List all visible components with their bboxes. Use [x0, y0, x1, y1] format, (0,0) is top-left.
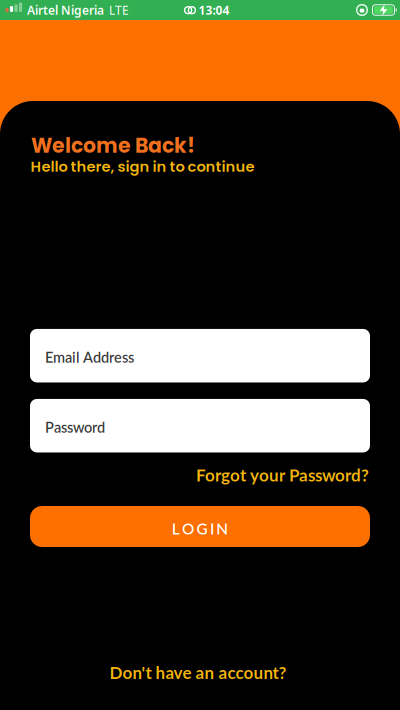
button[interactable]: L	[30, 506, 370, 547]
button[interactable]: Email Address	[30, 329, 370, 382]
staticText: LTE	[109, 2, 129, 18]
staticText: N	[216, 519, 228, 538]
staticText: G	[196, 519, 207, 538]
staticText: Forgot your Password?	[196, 465, 369, 485]
button[interactable]: Password	[30, 399, 370, 452]
staticText: 13:04	[198, 2, 229, 18]
button[interactable]: Forgot your Password?	[196, 465, 369, 485]
staticText: I	[210, 519, 214, 538]
staticText: L	[172, 519, 180, 538]
staticText: Airtel Nigeria	[27, 2, 104, 18]
staticText: Hello there, sign in to continue	[30, 156, 254, 177]
staticText: O	[182, 519, 194, 538]
staticText: Welcome Back!	[31, 131, 195, 160]
staticText: Password	[45, 418, 105, 436]
staticText: Email Address	[45, 348, 134, 366]
button[interactable]: Don't have an account?	[109, 662, 286, 683]
staticText: Don't have an account?	[109, 662, 286, 683]
